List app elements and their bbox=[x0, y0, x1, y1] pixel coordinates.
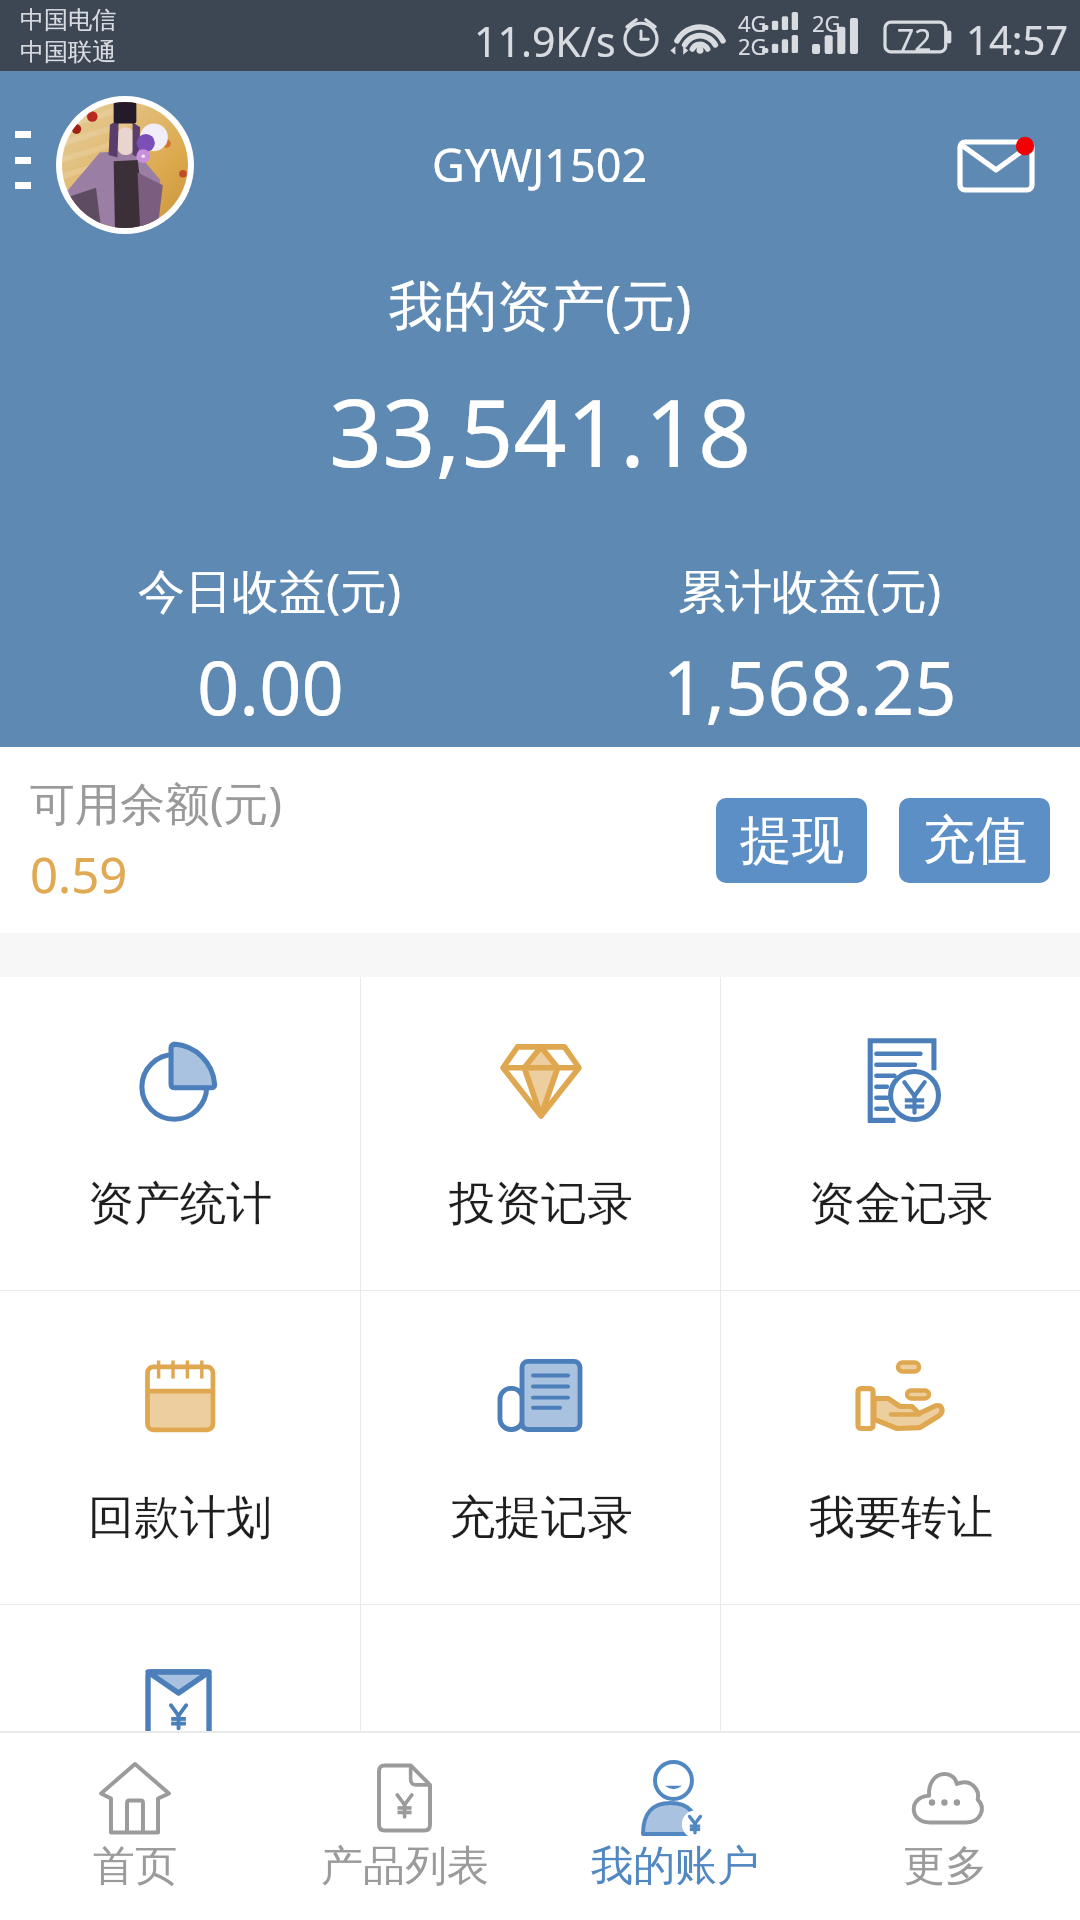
button[interactable]: Profile avatar bbox=[62, 102, 188, 228]
staticText: 中国联通 bbox=[20, 37, 116, 67]
staticText: 2G bbox=[738, 31, 767, 61]
button[interactable]: 首页 bbox=[0, 1733, 270, 1920]
staticText: 1,568.25 bbox=[663, 636, 957, 737]
button[interactable]: 提现 bbox=[716, 798, 867, 883]
staticText: 14:57 bbox=[966, 12, 1069, 66]
staticText: 我的资产(元) bbox=[389, 267, 692, 341]
button[interactable]: 我要转让 bbox=[721, 1291, 1080, 1604]
button[interactable]: 资金记录 bbox=[721, 977, 1080, 1290]
staticText: 11.9K/s bbox=[474, 13, 616, 69]
staticText: 产品列表 bbox=[321, 1840, 489, 1893]
staticText: 投资记录 bbox=[449, 1175, 633, 1233]
staticText: 0.59 bbox=[30, 841, 128, 908]
staticText: 资产统计 bbox=[88, 1175, 272, 1233]
staticText: 首页 bbox=[93, 1840, 177, 1893]
button[interactable]: 我的账户 bbox=[540, 1733, 810, 1920]
staticText: 我的账户 bbox=[591, 1840, 759, 1893]
staticText: 回款计划 bbox=[88, 1489, 272, 1547]
staticText: 今日收益(元) bbox=[138, 558, 402, 622]
button[interactable]: Messages bbox=[948, 134, 1048, 200]
staticText: 资金记录 bbox=[809, 1175, 993, 1233]
button[interactable]: 充提记录 bbox=[361, 1291, 720, 1604]
staticText: 我要转让 bbox=[809, 1489, 993, 1547]
button[interactable]: 充值 bbox=[899, 798, 1050, 883]
button[interactable]: Mail record bbox=[0, 1605, 360, 1731]
staticText: 充值 bbox=[923, 808, 1027, 874]
button[interactable]: 投资记录 bbox=[361, 977, 720, 1290]
staticText: 33,541.18 bbox=[329, 368, 752, 495]
button[interactable]: 更多 bbox=[810, 1733, 1080, 1920]
staticText: 0.00 bbox=[197, 636, 344, 737]
staticText: 72 bbox=[897, 19, 932, 60]
staticText: 更多 bbox=[903, 1840, 987, 1893]
button[interactable]: 资产统计 bbox=[0, 977, 360, 1290]
button[interactable]: 产品列表 bbox=[270, 1733, 540, 1920]
staticText: 2G bbox=[812, 8, 841, 38]
staticText: GYWJ1502 bbox=[432, 134, 648, 195]
staticText: 累计收益(元) bbox=[678, 558, 942, 622]
button[interactable]: 回款计划 bbox=[0, 1291, 360, 1604]
staticText: 充提记录 bbox=[449, 1489, 633, 1547]
button[interactable]: Menu bbox=[9, 131, 37, 189]
staticText: 中国电信 bbox=[20, 5, 116, 35]
staticText: 4G bbox=[738, 8, 767, 38]
staticText: 提现 bbox=[740, 808, 844, 874]
staticText: 可用余额(元) bbox=[30, 772, 283, 833]
